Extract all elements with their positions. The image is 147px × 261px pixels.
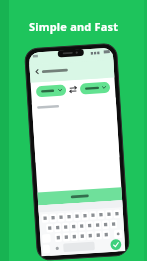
button[interactable]: Simple and Fast: [29, 19, 119, 34]
